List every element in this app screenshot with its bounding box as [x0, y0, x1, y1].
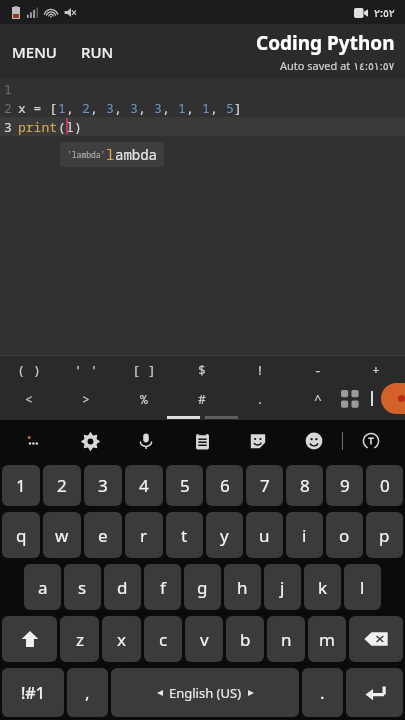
staticText: 5: [226, 99, 234, 117]
staticText: 2: [57, 474, 67, 497]
button[interactable]: v: [185, 616, 223, 662]
button[interactable]: l: [344, 564, 381, 610]
button[interactable]: 2: [43, 465, 81, 506]
staticText: e: [98, 524, 108, 547]
staticText: 2: [82, 99, 90, 117]
button[interactable]: Stickers: [230, 420, 286, 462]
staticText: 9: [340, 474, 350, 497]
button[interactable]: MENU: [0, 34, 69, 70]
button[interactable]: 7: [246, 465, 283, 506]
button[interactable]: Settings: [62, 420, 118, 462]
staticText: l: [360, 576, 365, 599]
button[interactable]: Keyboard layouts: [337, 386, 363, 412]
button[interactable]: .: [302, 668, 343, 717]
button[interactable]: English (US): [111, 668, 299, 717]
button[interactable]: n: [267, 616, 305, 662]
button[interactable]: Clipboard: [174, 420, 230, 462]
button[interactable]: $: [173, 356, 231, 383]
button[interactable]: a: [24, 564, 61, 610]
button[interactable]: ( ): [0, 356, 57, 383]
button[interactable]: z: [60, 616, 99, 662]
button[interactable]: g: [184, 564, 221, 610]
button[interactable]: y: [206, 512, 243, 558]
button[interactable]: More: [6, 420, 62, 462]
button[interactable]: Emoji: [286, 420, 342, 462]
button[interactable]: r: [125, 512, 163, 558]
button[interactable]: q: [2, 512, 40, 558]
button[interactable]: Translate: [343, 420, 399, 462]
staticText: $: [198, 361, 206, 379]
button[interactable]: h: [224, 564, 261, 610]
staticText: ,: [138, 99, 154, 117]
button[interactable]: 1: [2, 465, 40, 506]
button[interactable]: b: [226, 616, 264, 662]
button[interactable]: !: [231, 356, 289, 383]
staticText: 3: [130, 99, 138, 117]
button[interactable]: 5: [166, 465, 203, 506]
staticText: 3: [98, 474, 108, 497]
button[interactable]: %: [115, 383, 173, 414]
button[interactable]: t: [166, 512, 203, 558]
button[interactable]: [ ]: [115, 356, 173, 383]
staticText: f: [160, 576, 166, 599]
button[interactable]: !#1: [2, 668, 64, 717]
button[interactable]: 8: [286, 465, 323, 506]
button[interactable]: u: [246, 512, 283, 558]
staticText: d: [117, 576, 128, 599]
staticText: print: [18, 118, 58, 136]
button[interactable]: Voice input: [118, 420, 174, 462]
button[interactable]: Shift: [2, 616, 57, 662]
button[interactable]: d: [104, 564, 141, 610]
staticText: %: [140, 390, 148, 408]
button[interactable]: >: [57, 383, 115, 414]
button[interactable]: -: [289, 356, 347, 383]
button[interactable]: #: [173, 383, 231, 414]
staticText: h: [237, 576, 248, 599]
staticText: ,: [114, 99, 130, 117]
staticText: .: [320, 681, 325, 704]
staticText: w: [55, 524, 69, 547]
button[interactable]: <: [0, 383, 57, 414]
button[interactable]: RUN: [69, 34, 126, 70]
staticText: 3: [154, 99, 162, 117]
button[interactable]: 6: [206, 465, 243, 506]
button[interactable]: e: [84, 512, 122, 558]
button[interactable]: 3: [84, 465, 122, 506]
staticText: 8: [300, 474, 310, 497]
button[interactable]: Backspace: [349, 616, 403, 662]
staticText: .: [256, 390, 264, 408]
staticText: >: [82, 390, 90, 408]
staticText: 4: [139, 474, 149, 497]
button[interactable]: 'lambda': [60, 142, 164, 167]
button[interactable]: o: [326, 512, 363, 558]
button[interactable]: j: [264, 564, 301, 610]
staticText: k: [318, 576, 328, 599]
button[interactable]: 0: [366, 465, 403, 506]
button[interactable]: p: [366, 512, 403, 558]
staticText: 7: [260, 474, 270, 497]
staticText: b: [240, 628, 251, 651]
button[interactable]: f: [144, 564, 181, 610]
button[interactable]: w: [43, 512, 81, 558]
button[interactable]: ^: [289, 383, 347, 414]
button[interactable]: .: [231, 383, 289, 414]
button[interactable]: +: [347, 356, 405, 383]
staticText: ' ': [74, 361, 98, 379]
button[interactable]: 9: [326, 465, 363, 506]
staticText: l: [66, 118, 74, 136]
staticText: g: [197, 576, 208, 599]
button[interactable]: x: [102, 616, 141, 662]
button[interactable]: Enter: [346, 668, 403, 717]
button[interactable]: k: [304, 564, 341, 610]
staticText: Coding Python: [256, 30, 395, 56]
button[interactable]: 4: [125, 465, 163, 506]
button[interactable]: ' ': [57, 356, 115, 383]
staticText: ,: [210, 99, 226, 117]
button[interactable]: ,: [67, 668, 108, 717]
button[interactable]: c: [144, 616, 182, 662]
button[interactable]: i: [286, 512, 323, 558]
button[interactable]: s: [64, 564, 101, 610]
staticText: Auto saved at ١٤:٥١:٥٧: [280, 58, 395, 73]
button[interactable]: m: [308, 616, 346, 662]
staticText: ,: [162, 99, 178, 117]
